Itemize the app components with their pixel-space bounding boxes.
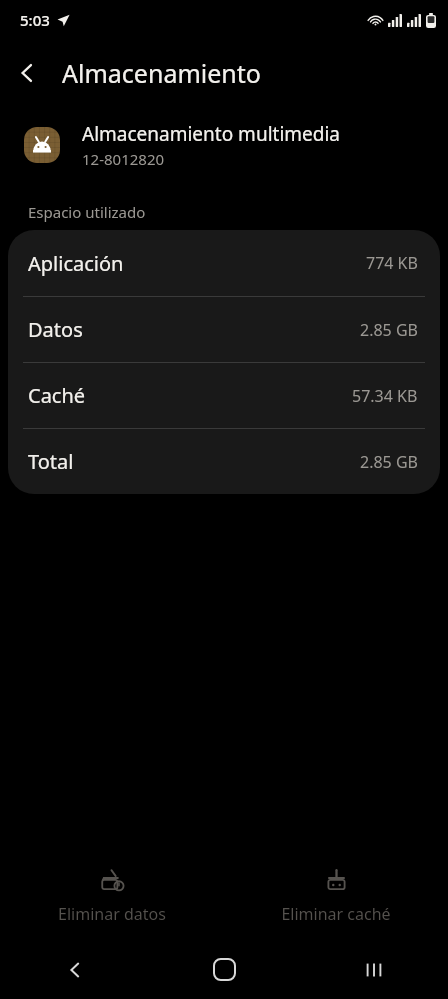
button[interactable]: Almacenamiento multimedia: [0, 106, 448, 184]
staticText: Almacenamiento multimedia: [82, 121, 341, 147]
button[interactable]: Aplicación: [8, 230, 440, 296]
staticText: Total: [28, 448, 74, 475]
button[interactable]: Datos: [8, 297, 440, 362]
button[interactable]: Atrás: [0, 940, 150, 999]
button[interactable]: Total: [8, 429, 440, 494]
staticText: 2.85 GB: [360, 319, 418, 341]
staticText: 2.85 GB: [360, 451, 418, 473]
staticText: Datos: [28, 316, 83, 343]
button[interactable]: Inicio: [150, 940, 299, 999]
staticText: Almacenamiento: [62, 56, 261, 90]
button[interactable]: Eliminar caché: [257, 862, 415, 931]
staticText: 774 KB: [366, 252, 418, 274]
staticText: Aplicación: [28, 250, 124, 277]
button[interactable]: Eliminar datos: [34, 862, 190, 931]
staticText: Eliminar datos: [58, 903, 166, 925]
button[interactable]: Atrás: [0, 46, 54, 100]
staticText: Caché: [28, 382, 86, 409]
staticText: 5:03: [20, 10, 50, 30]
staticText: Espacio utilizado: [28, 202, 146, 222]
staticText: 12-8012820: [82, 149, 165, 169]
staticText: 57.34 KB: [352, 385, 418, 407]
button[interactable]: Caché: [8, 363, 440, 428]
staticText: Eliminar caché: [281, 903, 391, 925]
button[interactable]: Recientes: [299, 940, 448, 999]
